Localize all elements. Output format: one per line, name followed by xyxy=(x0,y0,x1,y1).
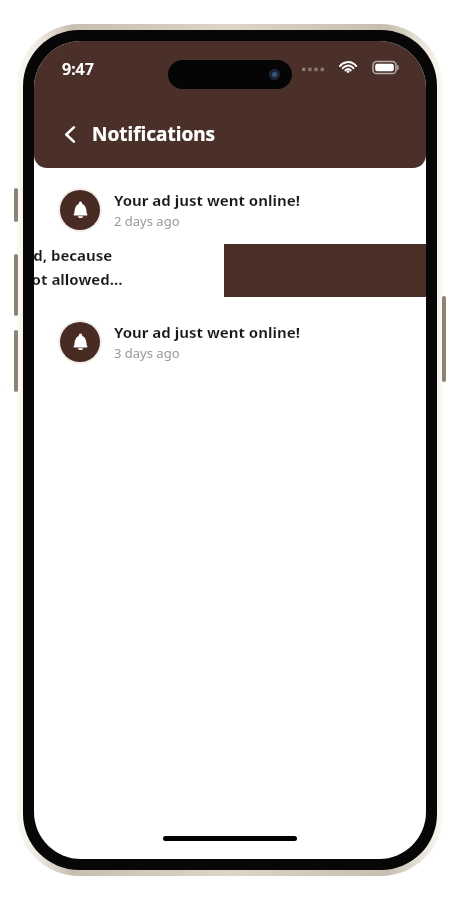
button[interactable]: was rejected, because these are not allo… xyxy=(34,240,426,304)
button[interactable]: Back xyxy=(53,117,87,151)
staticText: 2 days ago xyxy=(114,212,180,230)
staticText: Your ad just went online! xyxy=(114,190,300,210)
staticText: was rejected, because these are not allo… xyxy=(34,245,123,289)
staticText: Notifications xyxy=(92,121,216,147)
staticText: 3 days ago xyxy=(114,344,180,362)
staticText: Your ad just went online! xyxy=(114,322,300,342)
staticText: 9:47 xyxy=(62,58,94,80)
button[interactable]: Your ad just went online! xyxy=(34,313,426,371)
button[interactable]: Your ad just went online! xyxy=(34,181,426,239)
